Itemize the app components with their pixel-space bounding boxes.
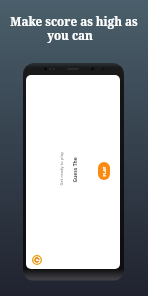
staticText: you can — [0, 27, 144, 43]
button[interactable]: Replay — [32, 255, 42, 265]
button[interactable]: PLAY — [98, 162, 110, 180]
staticText: Make score as high as — [0, 13, 148, 29]
staticText: PLAY — [101, 166, 106, 176]
staticText: Get ready to play — [58, 151, 63, 185]
staticText: Guess The — [71, 156, 78, 182]
